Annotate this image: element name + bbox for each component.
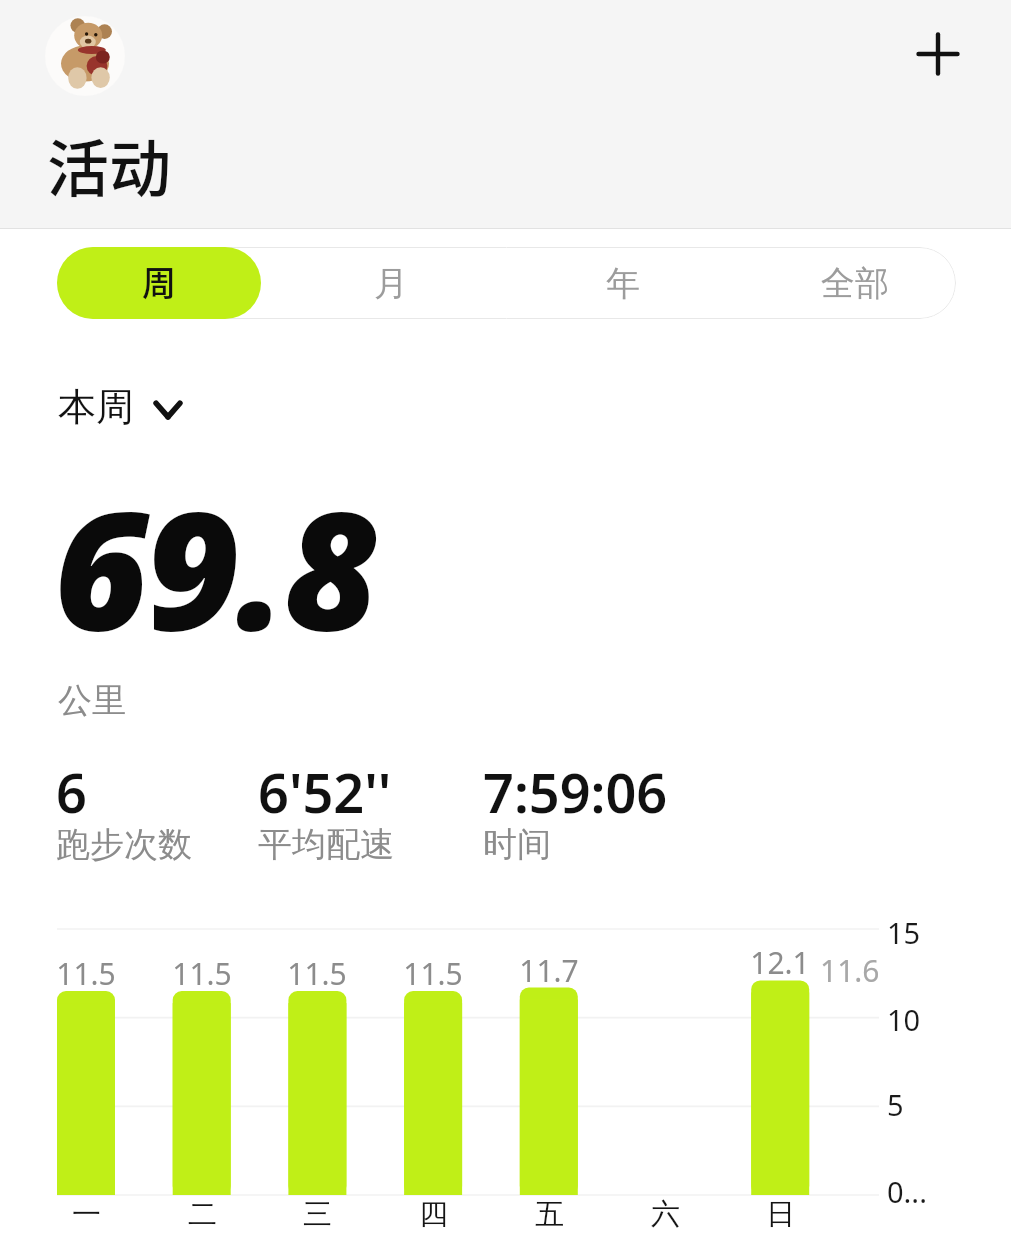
staticText: 六	[651, 1196, 680, 1233]
staticText: 11.5	[403, 953, 463, 994]
staticText: 12.1	[750, 942, 810, 983]
button[interactable]: 月	[275, 247, 507, 319]
staticText: 五	[535, 1196, 564, 1233]
staticText: 三	[303, 1196, 332, 1233]
button[interactable]: 本周 选择时间范围	[52, 375, 192, 439]
staticText: 周	[142, 257, 176, 306]
button[interactable]: 年	[507, 247, 739, 319]
staticText: 11.7	[519, 950, 579, 991]
staticText: 一	[72, 1196, 101, 1233]
staticText: 本周	[58, 383, 134, 431]
staticText: 年	[606, 262, 640, 305]
button[interactable]: Profile	[45, 16, 125, 96]
staticText: 月	[374, 262, 408, 305]
button[interactable]: 全部	[739, 247, 971, 319]
staticText: 0...	[887, 1172, 927, 1211]
staticText: 6'52''	[258, 755, 392, 829]
staticText: 10	[887, 1000, 921, 1039]
staticText: 日	[766, 1196, 795, 1233]
staticText: 7:59:06	[483, 755, 668, 829]
staticText: 跑步次数	[56, 823, 192, 866]
staticText: 平均配速	[258, 823, 394, 866]
staticText: 6	[56, 755, 87, 829]
staticText: 5	[887, 1085, 904, 1124]
button[interactable]: Add activity	[898, 14, 978, 94]
staticText: 11.6	[820, 950, 880, 991]
staticText: 四	[419, 1196, 448, 1233]
staticText: 11.5	[172, 953, 232, 994]
staticText: 11.5	[56, 953, 116, 994]
staticText: 时间	[483, 823, 551, 866]
staticText: 全部	[821, 262, 889, 305]
staticText: 69.8	[54, 456, 376, 678]
staticText: 11.5	[287, 953, 347, 994]
staticText: 活动	[47, 120, 172, 210]
staticText: 15	[887, 913, 921, 952]
button[interactable]: 周	[57, 247, 261, 319]
staticText: 公里	[58, 679, 126, 722]
staticText: 二	[188, 1196, 217, 1233]
